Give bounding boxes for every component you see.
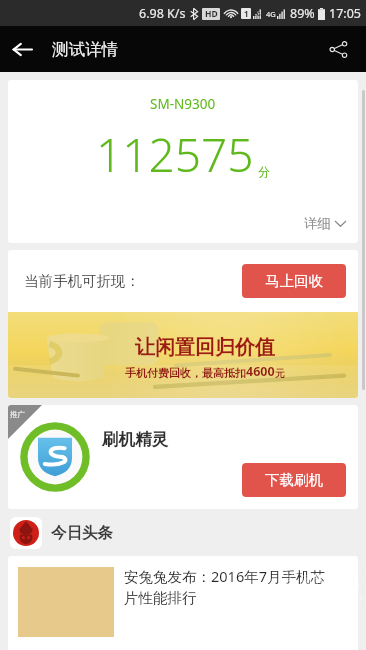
- staticText: 推广: [10, 410, 25, 419]
- staticText: HD: [205, 8, 218, 20]
- button[interactable]: 今日头条: [10, 517, 366, 549]
- staticText: 元: [275, 367, 285, 380]
- staticText: 片性能排行: [124, 589, 197, 607]
- staticText: 17:05: [329, 5, 361, 22]
- button[interactable]: 详细: [292, 210, 358, 237]
- staticText: @小 HUO: [322, 592, 362, 604]
- button[interactable]: 马上回收: [242, 264, 346, 298]
- staticText: 分: [258, 164, 270, 179]
- staticText: 1: [244, 8, 249, 19]
- staticText: 4600: [246, 363, 275, 380]
- staticText: 测试详情: [52, 39, 118, 60]
- staticText: 下载刷机: [265, 471, 323, 489]
- staticText: 89%: [290, 5, 315, 22]
- staticText: 安兔兔发布：2016年7月手机芯: [124, 566, 325, 586]
- staticText: 刷机精灵: [102, 429, 168, 450]
- button[interactable]: Share: [316, 27, 360, 71]
- staticText: 今日头条: [51, 523, 113, 543]
- staticText: 112575: [96, 123, 254, 186]
- staticText: 6.98 K/s: [139, 5, 186, 22]
- staticText: 手机付费回收，最高抵扣: [125, 366, 246, 380]
- staticText: 详细: [304, 215, 331, 232]
- staticText: 让闲置回归价值: [135, 335, 275, 360]
- staticText: 当前手机可折现：: [24, 272, 140, 290]
- staticText: 4G: [266, 9, 276, 19]
- staticText: SM-N9300: [150, 95, 216, 113]
- staticText: 盖乐世社区: [282, 572, 362, 592]
- button[interactable]: 安兔兔发布：2016年7月手机芯: [8, 556, 358, 650]
- staticText: 2G: [253, 10, 261, 18]
- button[interactable]: Back: [0, 27, 44, 71]
- button[interactable]: 下载刷机: [242, 463, 346, 497]
- staticText: 马上回收: [265, 272, 323, 290]
